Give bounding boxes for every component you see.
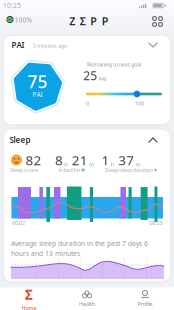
staticText: 1 (101, 151, 109, 169)
staticText: h (64, 161, 67, 168)
staticText: 100 (135, 100, 144, 107)
staticText: Sleep score (10, 166, 38, 174)
button[interactable]: Sleep (4, 130, 170, 281)
staticText: Profile (137, 300, 152, 307)
staticText: 37 (118, 151, 134, 169)
staticText: PAI (32, 90, 42, 99)
staticText: m (89, 161, 94, 168)
staticText: PAI (99, 76, 107, 83)
staticText: PAI (11, 40, 24, 50)
staticText: Sleep (9, 135, 30, 145)
staticText: 00:02 (12, 219, 25, 227)
staticText: Average sleep duration in the past 7 day… (11, 239, 148, 248)
staticText: Remaining to next goal (87, 61, 141, 68)
staticText: 75 (27, 70, 47, 93)
staticText: 25 (83, 67, 97, 83)
button[interactable] (150, 14, 164, 28)
staticText: 82 (25, 151, 41, 169)
staticText: Health (79, 300, 95, 307)
staticText: in bed for (58, 166, 80, 174)
staticText: 06:23 (149, 219, 162, 227)
button[interactable]: Health (58, 287, 116, 310)
staticText: m (136, 161, 141, 168)
staticText: Σ (25, 286, 33, 303)
staticText: 8 (55, 151, 63, 169)
button[interactable]: Profile (116, 287, 174, 310)
staticText: 100% (14, 15, 32, 24)
staticText: 21 (72, 151, 88, 169)
staticText: h (111, 161, 114, 168)
staticText: 10:25 (3, 1, 21, 10)
staticText: Deep sleep duration (105, 166, 153, 174)
staticText: hours and 13 minutes (11, 249, 80, 258)
staticText: 0 (86, 100, 89, 107)
staticText: 5 minutes ago (33, 42, 67, 49)
staticText: ZΣPP (69, 14, 109, 28)
button[interactable]: PAI (4, 36, 170, 124)
staticText: Home (21, 304, 36, 310)
button[interactable]: Σ (0, 287, 58, 310)
